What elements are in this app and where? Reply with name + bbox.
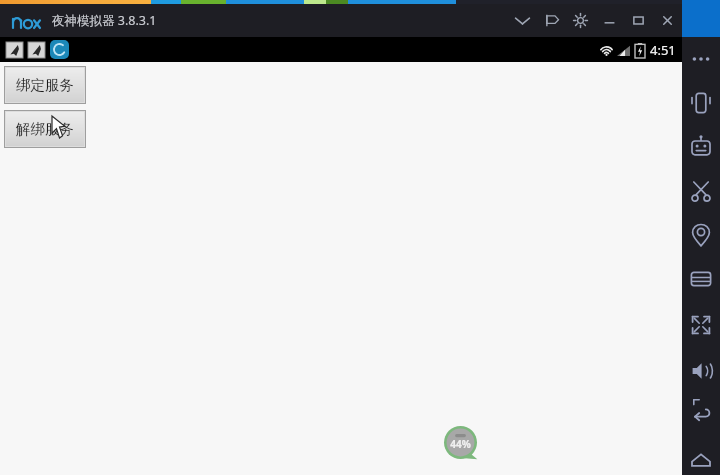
button[interactable]: More options (686, 44, 716, 74)
button[interactable]: Screenshot crop (686, 176, 716, 206)
button[interactable]: Keyboard (686, 264, 716, 294)
button[interactable]: Minimize (595, 6, 624, 35)
button[interactable]: Volume (686, 356, 716, 386)
staticText: 4:51 (650, 41, 676, 59)
button[interactable]: Full screen (686, 310, 716, 340)
button[interactable]: 绑定服务 (6, 68, 84, 102)
button[interactable]: Location (686, 220, 716, 250)
button[interactable]: Home (686, 446, 716, 475)
button[interactable]: Settings (566, 6, 595, 35)
staticText: 44% (450, 437, 471, 451)
button[interactable]: Maximize (624, 6, 653, 35)
button[interactable]: More (508, 6, 537, 35)
button[interactable]: 解绑服务 (6, 112, 84, 146)
staticText: 绑定服务 (16, 76, 74, 94)
button[interactable]: Emulator settings (686, 132, 716, 162)
staticText: 解绑服务 (16, 120, 74, 138)
button[interactable]: Shake (686, 88, 716, 118)
staticText: 夜神模拟器 3.8.3.1 (52, 12, 157, 29)
button[interactable]: Close (653, 6, 682, 35)
button[interactable]: Battery 44 percent (444, 426, 477, 459)
button[interactable]: Back (686, 398, 716, 428)
button[interactable]: Pin (537, 6, 566, 35)
